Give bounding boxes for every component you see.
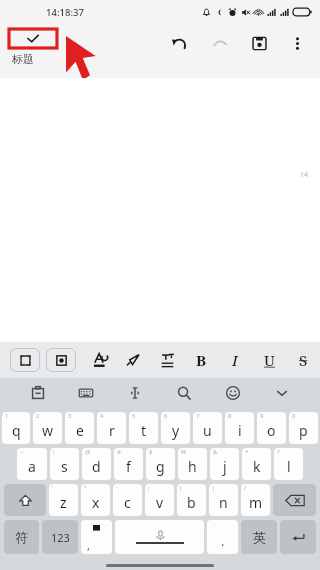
button[interactable]: 3: [65, 412, 94, 444]
staticText: 9: [260, 412, 264, 420]
button[interactable]: 8: [225, 412, 254, 444]
button[interactable]: 0: [289, 412, 318, 444]
button[interactable]: 5: [129, 412, 158, 444]
button[interactable]: ': [49, 484, 78, 516]
staticText: w: [42, 421, 54, 440]
staticText: c: [124, 493, 131, 512]
button[interactable]: 1: [2, 412, 30, 444]
button[interactable]: Enter: [280, 520, 316, 554]
button[interactable]: Shift: [4, 484, 46, 516]
button[interactable]: 6: [161, 412, 190, 444]
button[interactable]: Cursor: [110, 378, 159, 408]
staticText: 4: [100, 412, 104, 420]
button[interactable]: Collapse keyboard: [257, 378, 306, 408]
button[interactable]: Clipboard: [14, 378, 62, 408]
button[interactable]: 符: [4, 520, 39, 554]
button[interactable]: I: [218, 345, 252, 375]
button[interactable]: /: [241, 484, 270, 516]
staticText: I: [232, 350, 238, 370]
button[interactable]: 英: [241, 520, 277, 554]
button[interactable]: .: [207, 520, 238, 554]
staticText: k: [253, 457, 261, 476]
button[interactable]: 7: [193, 412, 222, 444]
button[interactable]: !: [50, 448, 79, 480]
staticText: 1: [5, 412, 9, 420]
staticText: *: [245, 448, 249, 456]
button[interactable]: ?: [274, 448, 303, 480]
staticText: %: [181, 448, 186, 456]
staticText: x: [92, 493, 100, 512]
button[interactable]: S: [286, 345, 320, 375]
button[interactable]: $: [146, 448, 175, 480]
button[interactable]: B: [184, 345, 218, 375]
staticText: ~: [20, 448, 24, 456]
button[interactable]: %: [178, 448, 207, 480]
button[interactable]: ;: [145, 484, 174, 516]
staticText: ': [52, 484, 54, 492]
staticText: .: [221, 532, 225, 550]
staticText: 0: [292, 412, 296, 420]
button[interactable]: Fullscreen: [10, 348, 40, 372]
staticText: 标题: [12, 52, 34, 66]
staticText: l: [287, 457, 291, 476]
staticText: &: [213, 448, 218, 456]
staticText: 14:18:37: [46, 6, 84, 19]
button[interactable]: Highlight: [117, 345, 150, 375]
button[interactable]: Save: [244, 30, 274, 56]
button[interactable]: *: [242, 448, 271, 480]
staticText: /: [244, 484, 247, 492]
staticText: 6: [164, 412, 168, 420]
staticText: ;: [148, 484, 150, 492]
staticText: S: [299, 350, 308, 370]
staticText: f: [126, 457, 131, 476]
button[interactable]: Font size: [150, 345, 184, 375]
staticText: 123: [51, 530, 70, 545]
staticText: (: [180, 484, 182, 492]
button[interactable]: ": [81, 484, 110, 516]
staticText: i: [238, 421, 242, 440]
staticText: 7: [196, 412, 200, 420]
button[interactable]: @: [82, 448, 111, 480]
staticText: 3: [68, 412, 72, 420]
button[interactable]: &: [210, 448, 239, 480]
staticText: ?: [277, 448, 280, 456]
button[interactable]: 123: [42, 520, 78, 554]
staticText: 8: [228, 412, 232, 420]
button[interactable]: Undo: [164, 30, 194, 56]
button[interactable]: #: [114, 448, 143, 480]
staticText: u: [203, 421, 212, 440]
button[interactable]: Insert image: [46, 348, 76, 372]
button[interactable]: Emoji: [208, 378, 257, 408]
button[interactable]: ): [209, 484, 238, 516]
staticText: ": [84, 484, 87, 492]
button[interactable]: :: [113, 484, 142, 516]
button[interactable]: ~: [17, 448, 47, 480]
button[interactable]: U: [252, 345, 286, 375]
staticText: t: [141, 421, 147, 440]
button[interactable]: Text color: [84, 345, 117, 375]
button[interactable]: 4: [97, 412, 126, 444]
staticText: y: [172, 421, 180, 440]
staticText: 5: [132, 412, 136, 420]
button[interactable]: ,: [81, 520, 112, 554]
button[interactable]: Keyboard layout: [62, 378, 110, 408]
staticText: n: [219, 493, 228, 512]
button[interactable]: 9: [257, 412, 286, 444]
staticText: p: [299, 421, 308, 440]
staticText: :: [116, 484, 118, 492]
button[interactable]: (: [177, 484, 206, 516]
button[interactable]: Search: [159, 378, 208, 408]
button[interactable]: More options: [282, 30, 312, 56]
staticText: g: [156, 457, 165, 476]
button[interactable]: Confirm: [9, 29, 57, 48]
button[interactable]: Backspace: [273, 484, 316, 516]
button[interactable]: Redo: [204, 30, 234, 56]
staticText: ): [212, 484, 214, 492]
staticText: @: [85, 448, 91, 456]
staticText: o: [267, 421, 276, 440]
staticText: r: [109, 421, 115, 440]
button[interactable]: Space: [115, 520, 204, 554]
button[interactable]: 2: [33, 412, 62, 444]
staticText: q: [12, 421, 21, 440]
staticText: B: [196, 350, 207, 370]
